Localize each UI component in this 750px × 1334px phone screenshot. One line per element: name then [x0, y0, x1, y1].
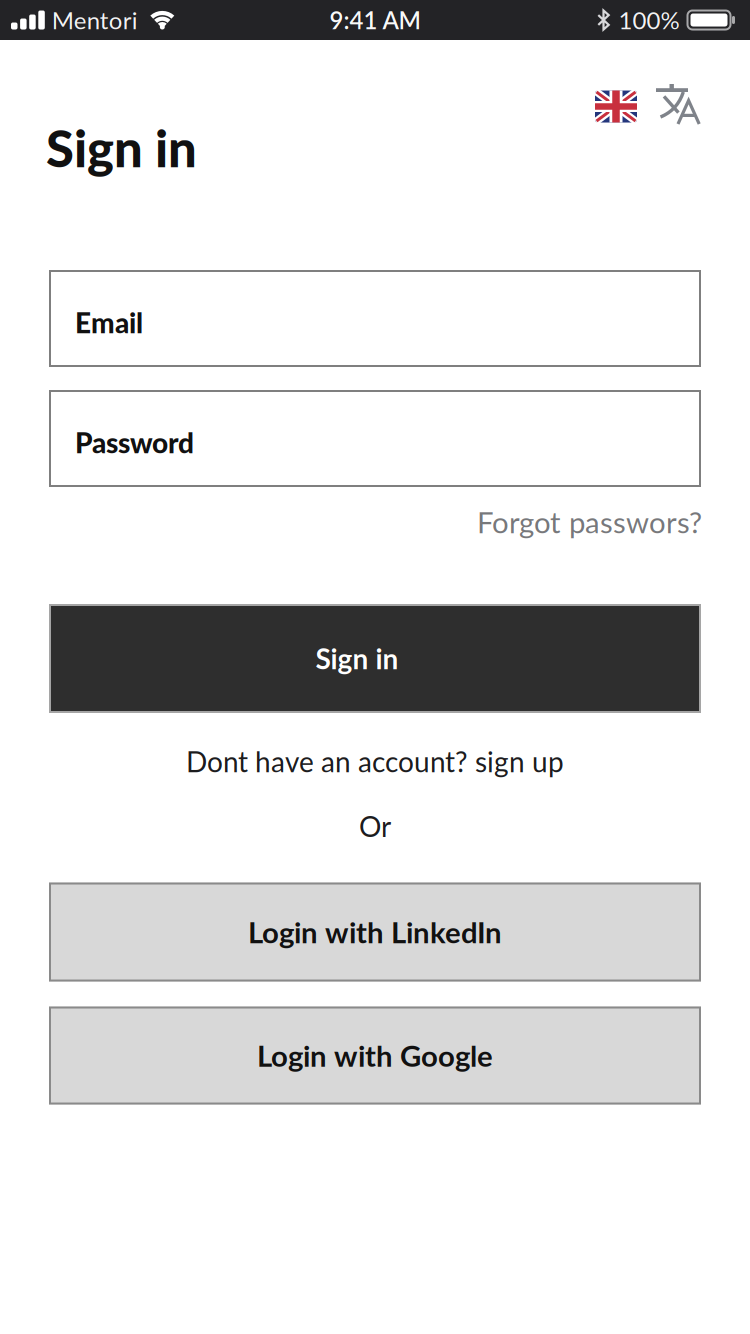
staticText: 100% — [618, 6, 679, 34]
button[interactable]: Translate — [656, 84, 700, 125]
button[interactable]: Login with Google — [49, 1006, 701, 1104]
staticText: Mentori — [52, 6, 138, 34]
button[interactable]: Email — [49, 270, 701, 367]
staticText: Password — [75, 426, 194, 459]
button[interactable]: Login with LinkedIn — [49, 882, 701, 981]
staticText: Login with Google — [257, 1038, 493, 1073]
staticText: Dont have an account? sign up — [186, 745, 564, 778]
button[interactable]: Password — [49, 390, 701, 487]
staticText: Login with LinkedIn — [248, 915, 502, 949]
staticText: Email — [75, 306, 143, 339]
button[interactable]: Forgot passwors? — [477, 505, 702, 539]
button[interactable]: Language: English — [595, 88, 637, 120]
button[interactable]: Dont have an account? sign up — [186, 745, 564, 778]
staticText: 9:41 AM — [329, 6, 420, 34]
staticText: Sign in — [46, 118, 197, 177]
staticText: Or — [359, 810, 391, 843]
button[interactable]: Sign in — [49, 604, 701, 713]
staticText: Sign in — [315, 642, 398, 675]
staticText: Forgot passwors? — [477, 505, 702, 539]
